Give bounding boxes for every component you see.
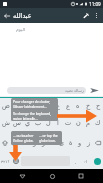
button[interactable]: Back	[15, 169, 29, 183]
button[interactable]: ش	[0, 113, 11, 132]
button[interactable]: ث	[22, 96, 33, 115]
staticText: م	[86, 119, 91, 127]
button[interactable]: Home	[45, 169, 59, 183]
button[interactable]: ض	[0, 96, 11, 115]
button[interactable]: ز	[84, 133, 93, 152]
staticText: غ	[56, 102, 60, 110]
button[interactable]: Send	[91, 153, 103, 169]
button[interactable]: ت	[63, 113, 73, 132]
staticText: ت	[65, 119, 72, 127]
staticText: ث	[24, 102, 31, 110]
staticText: ئ	[12, 139, 18, 147]
staticText: Pour changer de clavier, Glisser latéral…	[13, 99, 50, 109]
staticText: ب	[35, 119, 42, 127]
button[interactable]: ر	[39, 133, 48, 152]
staticText: ض	[2, 102, 10, 110]
button[interactable]: ئ	[10, 133, 20, 152]
staticText: ة	[69, 139, 73, 147]
staticText: و	[78, 139, 82, 147]
staticText: ... or tap the globe icon.	[39, 133, 58, 143]
button[interactable]: غ	[53, 96, 63, 115]
staticText: ع	[66, 102, 70, 110]
button[interactable]: Change keyboard	[11, 153, 21, 169]
button[interactable]: ؤ	[30, 133, 39, 152]
button[interactable]: ك	[93, 113, 103, 132]
staticText: ن	[76, 119, 81, 127]
button[interactable]: س	[11, 113, 22, 132]
staticText: س	[13, 119, 21, 127]
staticText: رسالة نصية	[65, 88, 84, 93]
button[interactable]: More options	[92, 11, 101, 20]
button[interactable]: Recents	[74, 169, 88, 183]
button[interactable]: ص	[11, 96, 22, 115]
button[interactable]: Back	[1, 10, 12, 21]
staticText: ف	[45, 102, 52, 110]
staticText: ص	[13, 102, 21, 110]
button[interactable]: م	[83, 113, 93, 132]
button[interactable]: ى	[57, 133, 66, 152]
button[interactable]: Send	[89, 85, 100, 95]
staticText: لا	[51, 139, 55, 147]
staticText: ر	[42, 139, 46, 147]
staticText: To change the keyboard, swipe laterally.…	[13, 111, 51, 120]
staticText: ا	[57, 119, 59, 127]
staticText: ك	[95, 119, 101, 127]
button[interactable]: ا	[53, 113, 63, 132]
button[interactable]: ح	[93, 96, 103, 115]
button[interactable]: ع	[63, 96, 73, 115]
staticText: ق	[35, 102, 41, 110]
button[interactable]: ء	[20, 133, 30, 152]
button[interactable]: Period	[71, 153, 81, 169]
staticText: ل	[46, 119, 51, 127]
button[interactable]: ف	[43, 96, 53, 115]
staticText: ٣٢١?	[1, 159, 10, 164]
button[interactable]: ل	[43, 113, 53, 132]
button[interactable]: Emoticon	[81, 153, 91, 169]
button[interactable]: لا	[48, 133, 57, 152]
staticText: ش	[2, 119, 10, 127]
button[interactable]: ة	[66, 133, 75, 152]
staticText: ح	[96, 102, 101, 110]
button[interactable]: ن	[73, 113, 83, 132]
staticText: ؤ	[33, 139, 37, 147]
staticText: ه	[76, 102, 80, 110]
button[interactable]: خ	[83, 96, 93, 115]
button[interactable]: Symbols	[0, 153, 11, 169]
staticText: ء	[23, 139, 27, 147]
staticText: ... ou toucher l'icône globe.	[13, 133, 34, 143]
button[interactable]: ب	[33, 113, 43, 132]
staticText: اليوم	[16, 27, 26, 32]
staticText: 11:09	[89, 1, 101, 7]
button[interactable]: و	[75, 133, 84, 152]
staticText: ز	[87, 139, 91, 147]
button[interactable]: Shift	[0, 133, 10, 152]
staticText: ي	[25, 119, 31, 127]
button[interactable]: Backspace	[93, 133, 103, 152]
button[interactable]: رسالة نصية	[7, 87, 86, 94]
button[interactable]: Attach	[80, 10, 92, 22]
button[interactable]: ه	[73, 96, 83, 115]
button[interactable]: ق	[33, 96, 43, 115]
staticText: خ	[86, 102, 91, 110]
staticText: عبدالله	[13, 12, 32, 20]
staticText: :·)	[84, 159, 88, 164]
button[interactable]: ي	[22, 113, 33, 132]
staticText: .	[75, 158, 77, 165]
staticText: ى	[59, 139, 65, 147]
